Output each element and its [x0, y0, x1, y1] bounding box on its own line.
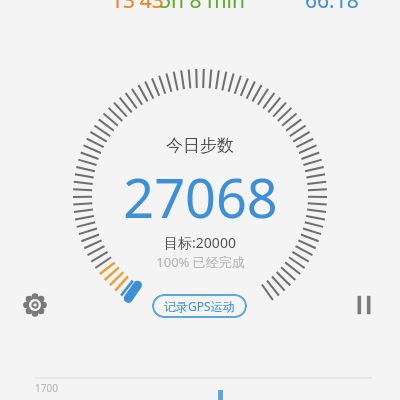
- staticText: 5h 8 min: [159, 0, 245, 10]
- button[interactable]: Distance: [152, 0, 252, 10]
- staticText: 1700: [35, 381, 58, 395]
- staticText: 66.18: [305, 0, 359, 10]
- staticText: 今日步数: [166, 135, 234, 156]
- staticText: 27068: [123, 160, 278, 224]
- staticText: 目标:20000: [164, 233, 236, 252]
- button[interactable]: Time: [292, 0, 372, 10]
- button[interactable]: 记录GPS运动: [152, 294, 247, 318]
- staticText: 100% 已经完成: [156, 253, 245, 271]
- button[interactable]: Pause: [348, 289, 380, 321]
- button[interactable]: Calories: [92, 0, 182, 10]
- staticText: 记录GPS运动: [164, 298, 235, 314]
- staticText: 13'43: [111, 0, 164, 10]
- button[interactable]: Settings: [19, 289, 51, 321]
